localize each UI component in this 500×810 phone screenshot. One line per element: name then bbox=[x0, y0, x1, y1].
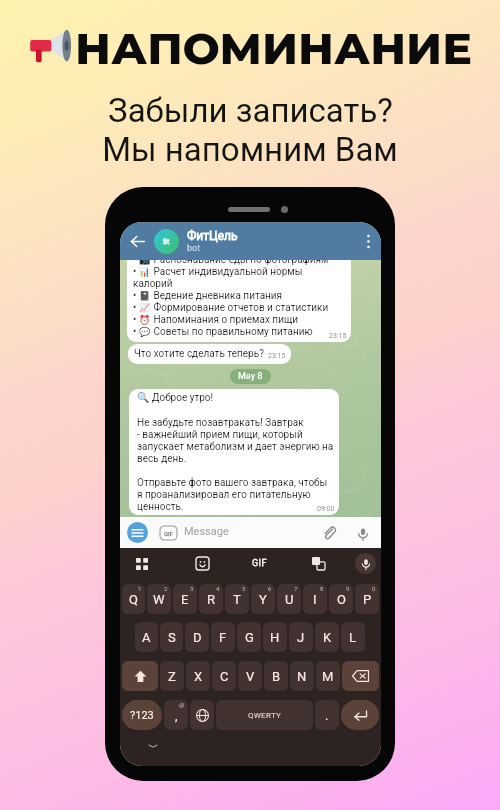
button[interactable]: Что хотите сделать теперь? bbox=[128, 344, 291, 364]
staticText: Z bbox=[168, 669, 176, 684]
staticText: 7 bbox=[294, 585, 298, 592]
button[interactable]: 🔍 Доброе утро! bbox=[129, 389, 339, 515]
staticText: 2 bbox=[164, 585, 168, 592]
staticText: Формирование отчетов и статистики bbox=[151, 302, 329, 314]
staticText: 💬 bbox=[139, 327, 151, 338]
button[interactable]: Stickers bbox=[192, 553, 213, 574]
staticText: W bbox=[153, 592, 165, 607]
staticText: GIF bbox=[252, 558, 267, 569]
staticText: Забыли записать? bbox=[108, 91, 393, 130]
button[interactable]: Menu bbox=[127, 522, 148, 543]
staticText: НАПОМИНАНИЕ bbox=[75, 21, 472, 71]
staticText: Не забудьте позавтракать! Завтрак - важн… bbox=[137, 404, 334, 512]
button[interactable]: F bbox=[211, 622, 235, 652]
button[interactable]: T bbox=[225, 584, 249, 614]
staticText: V bbox=[246, 669, 255, 684]
button[interactable]: Apps bbox=[131, 553, 152, 574]
button[interactable]: C bbox=[212, 661, 236, 691]
button[interactable]: W bbox=[147, 584, 171, 614]
button[interactable]: Translate bbox=[308, 553, 329, 574]
button[interactable]: U bbox=[277, 584, 301, 614]
staticText: A bbox=[142, 630, 151, 645]
staticText: L bbox=[349, 630, 357, 645]
button[interactable]: Y bbox=[251, 584, 275, 614]
button[interactable]: Back bbox=[120, 222, 154, 260]
button[interactable]: L bbox=[341, 622, 365, 652]
button[interactable]: G bbox=[237, 622, 261, 652]
button[interactable]: P bbox=[355, 584, 379, 614]
button[interactable]: Q bbox=[122, 584, 145, 614]
staticText: . bbox=[325, 708, 329, 723]
staticText: U bbox=[285, 592, 294, 607]
staticText: J bbox=[297, 630, 305, 645]
staticText: 📈 bbox=[139, 303, 151, 314]
staticText: H bbox=[270, 630, 280, 645]
staticText: Ведение дневника питания bbox=[151, 290, 283, 302]
staticText: GIF bbox=[164, 530, 174, 537]
button[interactable]: N bbox=[290, 661, 314, 691]
button[interactable]: Z bbox=[160, 661, 184, 691]
staticText: Q bbox=[129, 592, 138, 607]
staticText: C bbox=[220, 669, 229, 684]
staticText: 23:15 bbox=[268, 352, 286, 360]
button[interactable]: Voice message bbox=[353, 524, 372, 543]
staticText: • bbox=[133, 290, 139, 302]
button[interactable]: GIF keyboard bbox=[249, 553, 270, 574]
button[interactable]: S bbox=[160, 622, 183, 652]
staticText: 📓 bbox=[139, 291, 151, 302]
staticText: , bbox=[175, 708, 178, 723]
button[interactable]: May 8 bbox=[230, 369, 271, 384]
staticText: 4 bbox=[216, 585, 220, 592]
staticText: 3 bbox=[190, 585, 194, 592]
staticText: 9 bbox=[346, 585, 350, 592]
staticText: Message bbox=[184, 525, 229, 538]
staticText: I bbox=[313, 592, 317, 607]
staticText: bot bbox=[187, 243, 201, 254]
staticText: 0 bbox=[372, 585, 376, 592]
button[interactable]: A bbox=[135, 622, 158, 652]
button[interactable]: QWERTY bbox=[216, 700, 313, 730]
button[interactable]: Shift bbox=[122, 661, 158, 691]
staticText: 09:00 bbox=[317, 505, 335, 513]
button[interactable]: • bbox=[127, 252, 351, 342]
staticText: O bbox=[337, 592, 346, 607]
staticText: ⏰ bbox=[139, 315, 151, 326]
staticText: S bbox=[168, 630, 176, 645]
staticText: 6 bbox=[268, 585, 272, 592]
button[interactable]: GIF bbox=[160, 526, 177, 540]
button[interactable]: D bbox=[185, 622, 209, 652]
button[interactable]: Voice input bbox=[355, 553, 376, 574]
button[interactable]: I bbox=[303, 584, 327, 614]
staticText: T bbox=[233, 592, 241, 607]
staticText: Что хотите сделать теперь? bbox=[134, 348, 264, 360]
staticText: G bbox=[245, 630, 254, 645]
staticText: E bbox=[181, 592, 189, 607]
button[interactable]: E bbox=[173, 584, 197, 614]
button[interactable]: H bbox=[263, 622, 287, 652]
button[interactable]: More options bbox=[355, 222, 381, 260]
staticText: Мы напомним Вам bbox=[102, 130, 398, 169]
button[interactable]: , bbox=[164, 700, 188, 730]
staticText: fit bbox=[163, 238, 170, 246]
button[interactable]: M bbox=[316, 661, 340, 691]
staticText: • bbox=[133, 254, 139, 266]
button[interactable]: K bbox=[315, 622, 339, 652]
staticText: N bbox=[297, 669, 307, 684]
staticText: Y bbox=[259, 592, 267, 607]
button[interactable]: J bbox=[289, 622, 313, 652]
button[interactable]: X bbox=[186, 661, 210, 691]
button[interactable]: Attach bbox=[320, 524, 339, 543]
button[interactable]: . bbox=[315, 700, 339, 730]
staticText: 🔍 Доброе утро! bbox=[137, 392, 214, 404]
button[interactable]: B bbox=[264, 661, 288, 691]
button[interactable]: Backspace bbox=[342, 661, 379, 691]
button[interactable]: R bbox=[199, 584, 223, 614]
button[interactable]: O bbox=[329, 584, 353, 614]
button[interactable]: Enter bbox=[341, 700, 379, 730]
staticText: 📷 bbox=[139, 255, 151, 266]
button[interactable]: Change language bbox=[190, 700, 214, 730]
button[interactable]: ?123 bbox=[122, 700, 162, 730]
staticText: R bbox=[207, 592, 216, 607]
staticText: F bbox=[219, 630, 227, 645]
button[interactable]: V bbox=[238, 661, 262, 691]
